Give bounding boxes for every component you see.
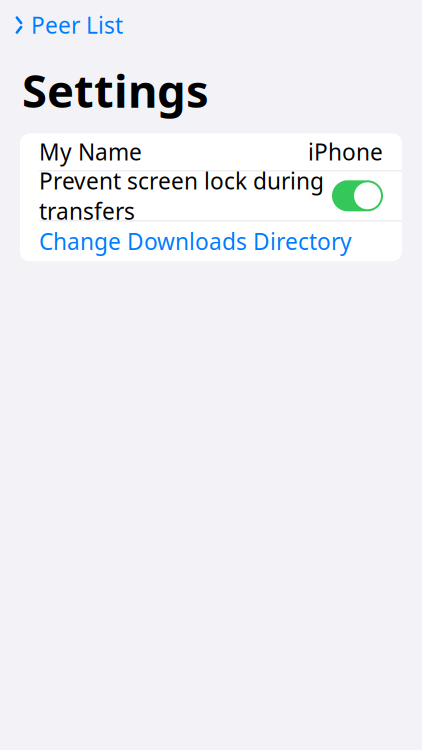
- button[interactable]: My Name: [20, 133, 402, 170]
- button[interactable]: Prevent screen lock during transfers: [20, 171, 402, 220]
- staticText: Change Downloads Directory: [39, 226, 352, 256]
- staticText: My Name: [39, 137, 142, 167]
- staticText: Prevent screen lock during transfers: [39, 166, 324, 226]
- button[interactable]: Peer List: [0, 6, 133, 44]
- button[interactable]: Change Downloads Directory: [20, 221, 402, 261]
- staticText: Peer List: [31, 10, 123, 40]
- staticText: Settings: [22, 60, 209, 120]
- staticText: iPhone: [308, 137, 383, 167]
